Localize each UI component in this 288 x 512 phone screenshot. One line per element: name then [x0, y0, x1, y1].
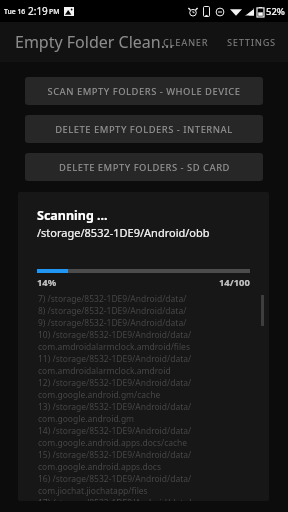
staticText: com.amdroidalarmclock.amdroid/files: [38, 341, 190, 353]
staticText: DELETE EMPTY FOLDERS - INTERNAL: [55, 123, 233, 136]
staticText: 14%: [37, 276, 57, 289]
staticText: 52%: [266, 5, 285, 18]
staticText: 14/100: [219, 276, 250, 289]
staticText: SETTINGS: [227, 36, 276, 49]
staticText: 13) /storage/8532-1DE9/Android/data/: [38, 401, 192, 413]
staticText: Tue 16: [4, 7, 26, 16]
staticText: com.google.android.gm/cache: [38, 389, 161, 401]
staticText: 2:19: [28, 4, 48, 18]
staticText: 12) /storage/8532-1DE9/Android/data/: [38, 377, 192, 389]
staticText: 7) /storage/8532-1DE9/Android/data/com.j…: [38, 293, 242, 305]
button[interactable]: SCAN EMPTY FOLDERS - WHOLE DEVICE: [25, 77, 263, 105]
staticText: 14) /storage/8532-1DE9/Android/data/: [38, 425, 192, 437]
staticText: CLEANER: [163, 36, 209, 49]
staticText: com.google.android.apps.docs: [38, 461, 161, 473]
staticText: com.google.android.gm: [38, 413, 135, 425]
staticText: 11) /storage/8532-1DE9/Android/data/: [38, 353, 192, 365]
staticText: SCAN EMPTY FOLDERS - WHOLE DEVICE: [47, 85, 241, 98]
staticText: 9) /storage/8532-1DE9/Android/data/com.w…: [38, 317, 242, 329]
staticText: com.jiochat.jiochatapp/files: [38, 485, 148, 497]
staticText: PM: [49, 7, 60, 16]
staticText: Empty Folder Clean…: [15, 31, 174, 53]
button[interactable]: SETTINGS: [218, 22, 288, 62]
staticText: 16) /storage/8532-1DE9/Android/data/: [38, 473, 192, 485]
button[interactable]: DELETE EMPTY FOLDERS - SD CARD: [25, 153, 263, 181]
staticText: 10) /storage/8532-1DE9/Android/data/: [38, 329, 192, 341]
staticText: DELETE EMPTY FOLDERS - SD CARD: [59, 161, 230, 174]
staticText: 15) /storage/8532-1DE9/Android/data/: [38, 449, 192, 461]
staticText: Scanning ...: [37, 207, 108, 224]
button[interactable]: CLEANER: [154, 22, 218, 62]
staticText: 8) /storage/8532-1DE9/Android/data/com.w…: [38, 305, 242, 317]
staticText: com.google.android.apps.docs/cache: [38, 437, 188, 449]
staticText: /storage/8532-1DE9/Android/obb: [37, 225, 210, 240]
staticText: 17) /storage/8532-1DE9/Android/data/com.…: [38, 497, 242, 501]
button[interactable]: DELETE EMPTY FOLDERS - INTERNAL: [25, 115, 263, 143]
staticText: com.amdroidalarmclock.amdroid: [38, 365, 171, 377]
